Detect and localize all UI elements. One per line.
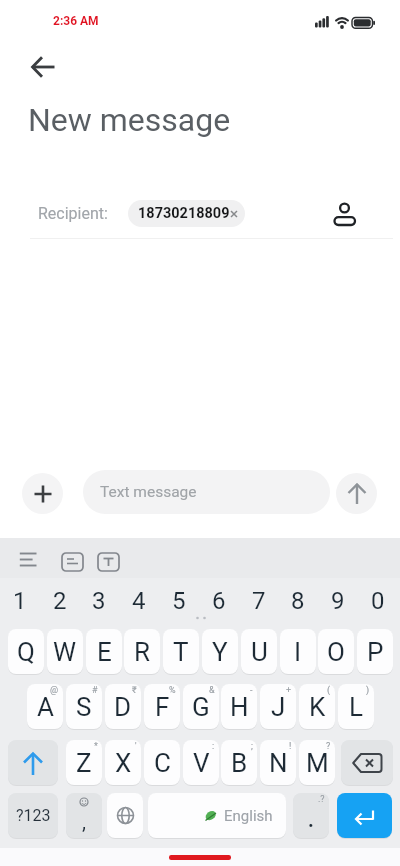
staticText: S [76,692,92,722]
staticText: % [169,685,176,696]
button[interactable] [8,740,58,785]
button[interactable]: 5 [160,580,198,622]
staticText: .? [318,794,325,805]
button[interactable] [22,56,64,78]
staticText: ( [327,685,331,696]
button[interactable]: R [124,629,160,674]
staticText: , [82,810,86,833]
button[interactable]: H [221,684,257,729]
staticText: ; [251,741,253,752]
staticText: N [269,748,288,778]
button[interactable]: O [318,629,354,674]
staticText: * [94,741,98,752]
button[interactable]: C [144,740,180,785]
staticText: M [306,748,329,778]
button[interactable] [330,193,360,231]
staticText: @ [50,685,59,696]
staticText: 1 [13,587,27,615]
button[interactable]: 2 [41,580,79,622]
button[interactable] [94,550,122,574]
staticText: 4 [132,587,146,615]
staticText: I [294,637,302,667]
button[interactable]: 18730218809 [128,200,245,227]
staticText: ₹ [132,685,137,696]
button[interactable] [341,740,393,785]
button[interactable]: 6 [200,580,238,622]
button[interactable]: B [221,740,257,785]
staticText: Recipient: [38,204,108,223]
staticText: ? [326,741,331,752]
button[interactable]: English [148,793,286,838]
staticText: D [114,692,132,722]
staticText: 5 [172,587,186,615]
staticText: Y [212,637,228,667]
button[interactable] [336,473,377,514]
button[interactable]: A [27,684,63,729]
button[interactable]: 7 [240,580,278,622]
button[interactable]: 4 [120,580,158,622]
button[interactable]: 8 [279,580,317,622]
staticText: F [155,692,170,722]
button[interactable]: Text message [83,470,330,514]
button[interactable]: , [66,793,102,838]
button[interactable]: F [144,684,180,729]
button[interactable]: N [260,740,296,785]
staticText: 8 [291,587,305,615]
button[interactable] [22,473,63,514]
button[interactable]: Q [8,629,44,674]
staticText: ?123 [16,806,51,825]
button[interactable]: W [47,629,83,674]
staticText: English [224,807,273,825]
button[interactable]: X [105,740,141,785]
staticText: 2:36 AM [53,14,99,28]
staticText: : [212,741,215,752]
staticText: 2 [53,587,67,615]
button[interactable]: S [66,684,102,729]
staticText: - [250,685,253,696]
button[interactable]: E [86,629,122,674]
staticText: A [37,692,54,722]
staticText: X [115,748,132,778]
staticText: T [173,637,189,667]
staticText: G [192,692,210,722]
button[interactable] [337,793,392,838]
button[interactable]: M [299,740,335,785]
staticText: 6 [212,587,226,615]
button[interactable]: G [183,684,219,729]
button[interactable]: ?123 [8,793,58,838]
staticText: U [251,637,268,667]
button[interactable]: K [299,684,335,729]
staticText: & [209,685,215,696]
button[interactable]: T [163,629,199,674]
staticText: New message [28,101,231,139]
button[interactable]: Z [66,740,102,785]
staticText: P [367,637,384,667]
staticText: E [97,637,112,667]
button[interactable] [107,793,143,838]
button[interactable]: Y [202,629,238,674]
button[interactable]: V [183,740,219,785]
button[interactable]: 0 [359,580,397,622]
staticText: K [309,692,326,722]
button[interactable]: P [357,629,393,674]
button[interactable]: U [241,629,277,674]
button[interactable]: 1 [1,580,39,622]
button[interactable]: 3 [80,580,118,622]
button[interactable]: J [260,684,296,729]
staticText: L [349,692,364,722]
button[interactable] [58,550,86,574]
staticText: 9 [331,587,345,615]
staticText: ! [289,741,292,752]
staticText: J [271,692,286,722]
staticText: . [308,808,314,831]
button[interactable] [14,550,42,574]
button[interactable]: . [293,793,329,838]
button[interactable]: L [338,684,374,729]
staticText: 0 [371,587,385,615]
staticText: B [231,748,248,778]
staticText: C [154,748,171,778]
staticText: 7 [252,587,266,615]
button[interactable]: D [105,684,141,729]
button[interactable]: 9 [319,580,357,622]
button[interactable]: I [280,629,316,674]
